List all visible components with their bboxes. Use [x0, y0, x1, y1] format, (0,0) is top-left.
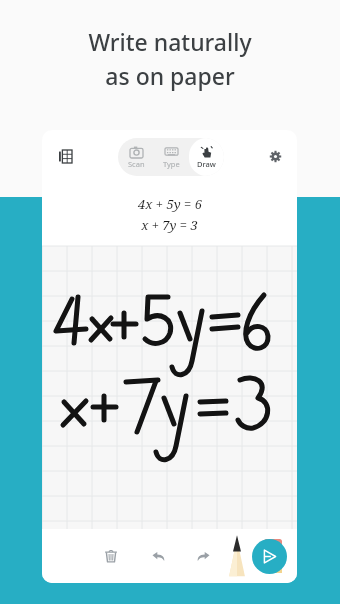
- button[interactable]: Draw: [189, 138, 224, 176]
- staticText: Draw: [197, 159, 216, 169]
- button[interactable]: Eraser: [259, 532, 287, 580]
- staticText: Scan: [128, 159, 145, 169]
- button[interactable]: Delete: [96, 541, 126, 571]
- button[interactable]: Pencil: [222, 532, 252, 580]
- staticText: as on paper: [105, 60, 235, 91]
- staticText: 4x + 5y = 6: [138, 195, 202, 213]
- button[interactable]: Type: [154, 138, 189, 176]
- button[interactable]: Undo: [143, 541, 173, 571]
- button[interactable]: Notes list: [51, 142, 79, 170]
- staticText: Write naturally: [88, 26, 252, 57]
- button[interactable]: Send: [252, 539, 287, 574]
- staticText: x + 7y = 3: [141, 216, 198, 234]
- button[interactable]: Settings: [261, 142, 289, 170]
- button[interactable]: Scan: [118, 138, 154, 176]
- staticText: Type: [163, 159, 180, 169]
- button[interactable]: Redo: [188, 541, 218, 571]
